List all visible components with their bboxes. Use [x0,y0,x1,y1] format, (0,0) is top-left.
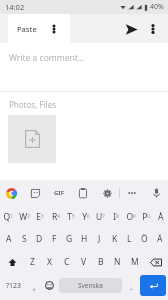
button[interactable]: GIF [47,180,71,206]
button[interactable]: Ä [152,228,167,250]
button[interactable]: Add photo or file [8,115,56,163]
button[interactable]: F [47,228,62,250]
button[interactable]: Y6 [78,206,93,228]
staticText: Å [158,211,164,223]
staticText: ?123 [6,281,22,291]
staticText: Ö [141,233,148,245]
button[interactable]: C [58,250,75,274]
button[interactable]: D [32,228,47,250]
button[interactable]: Backspace [143,250,168,274]
staticText: Ä [157,233,163,245]
staticText: R4 [52,211,60,223]
staticText: . [130,280,133,292]
staticText: A [6,233,12,245]
staticText: F [52,233,57,245]
button[interactable]: More options [47,22,61,36]
button[interactable]: Voice input [144,180,168,206]
button[interactable]: Settings [95,180,119,206]
button[interactable]: I8 [108,206,123,228]
button[interactable]: X [41,250,58,274]
staticText: L [127,233,132,245]
staticText: D [36,233,43,245]
button[interactable]: Paste [8,14,70,43]
button[interactable]: G [62,228,77,250]
button[interactable]: O9 [123,206,138,228]
staticText: I8 [113,211,119,223]
button[interactable]: Z [24,250,41,274]
staticText: Svenska [78,281,103,290]
staticText: 40% [150,2,164,12]
button[interactable]: M [126,250,143,274]
staticText: E3 [36,211,44,223]
staticText: Y6 [82,211,90,223]
staticText: GIF [54,189,64,197]
button[interactable]: Å [153,206,168,228]
button[interactable]: More options [143,19,163,39]
button[interactable]: . [124,274,138,297]
button[interactable]: Q1 [0,206,16,228]
staticText: Z [30,256,35,268]
button[interactable]: More [120,180,144,206]
staticText: V [81,256,87,268]
button[interactable]: L [122,228,137,250]
button[interactable]: T5 [63,206,78,228]
button[interactable]: ?123 [0,274,27,297]
button[interactable]: Clipboard [71,180,95,206]
staticText: P0 [142,211,150,223]
staticText: J [98,233,101,245]
button[interactable]: U7 [93,206,108,228]
staticText: Q1 [3,211,13,223]
button[interactable]: Enter [140,275,166,296]
button[interactable]: K [107,228,122,250]
staticText: Photos, Files [9,99,57,110]
button[interactable]: R4 [48,206,63,228]
button[interactable]: Emoji [41,274,57,297]
button[interactable]: N [109,250,126,274]
staticText: Write a comment... [9,52,85,64]
staticText: H [81,233,88,245]
staticText: , [33,280,36,292]
button[interactable]: H [77,228,92,250]
staticText: S [22,233,27,245]
staticText: Paste [17,24,37,34]
button[interactable]: V [75,250,92,274]
button[interactable]: , [27,274,41,297]
button[interactable]: S [17,228,32,250]
button[interactable]: W2 [16,206,32,228]
staticText: T5 [67,211,75,223]
staticText: N [114,256,121,268]
staticText: K [112,233,118,245]
button[interactable]: Google search [0,180,23,206]
button[interactable]: A [1,228,17,250]
staticText: C [64,256,70,268]
button[interactable]: E3 [32,206,48,228]
staticText: W2 [19,211,30,223]
staticText: B [98,256,104,268]
button[interactable]: Stickers [23,180,47,206]
button[interactable]: Shift [0,250,24,274]
staticText: 14:02 [5,2,25,12]
button[interactable]: P0 [138,206,153,228]
staticText: M [131,256,139,268]
staticText: G [66,233,73,245]
button[interactable]: Ö [137,228,152,250]
button[interactable]: Svenska [59,278,122,293]
button[interactable]: B [92,250,109,274]
staticText: X [47,256,52,268]
staticText: U7 [96,211,105,223]
button[interactable]: Send [119,17,143,41]
button[interactable]: J [92,228,107,250]
staticText: O9 [126,211,136,223]
